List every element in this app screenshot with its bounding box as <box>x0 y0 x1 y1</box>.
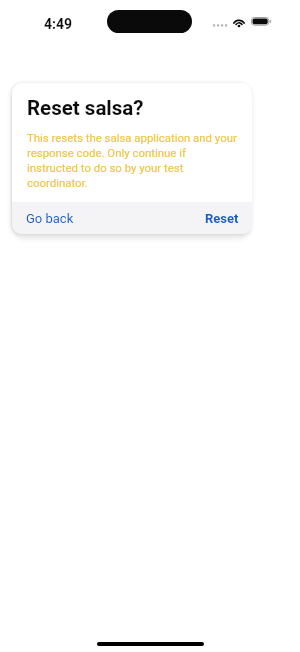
staticText: Reset <box>205 211 239 226</box>
staticText: 4:49 <box>44 16 73 32</box>
other: Wi-Fi <box>232 16 247 28</box>
button[interactable]: Reset <box>197 211 252 226</box>
staticText: Reset salsa? <box>27 98 144 120</box>
other: Cellular signal <box>212 23 229 29</box>
staticText: Go back <box>26 211 74 226</box>
staticText: This resets the salsa application and yo… <box>27 130 238 190</box>
other: Battery <box>251 17 272 26</box>
button[interactable]: Go back <box>12 211 82 226</box>
